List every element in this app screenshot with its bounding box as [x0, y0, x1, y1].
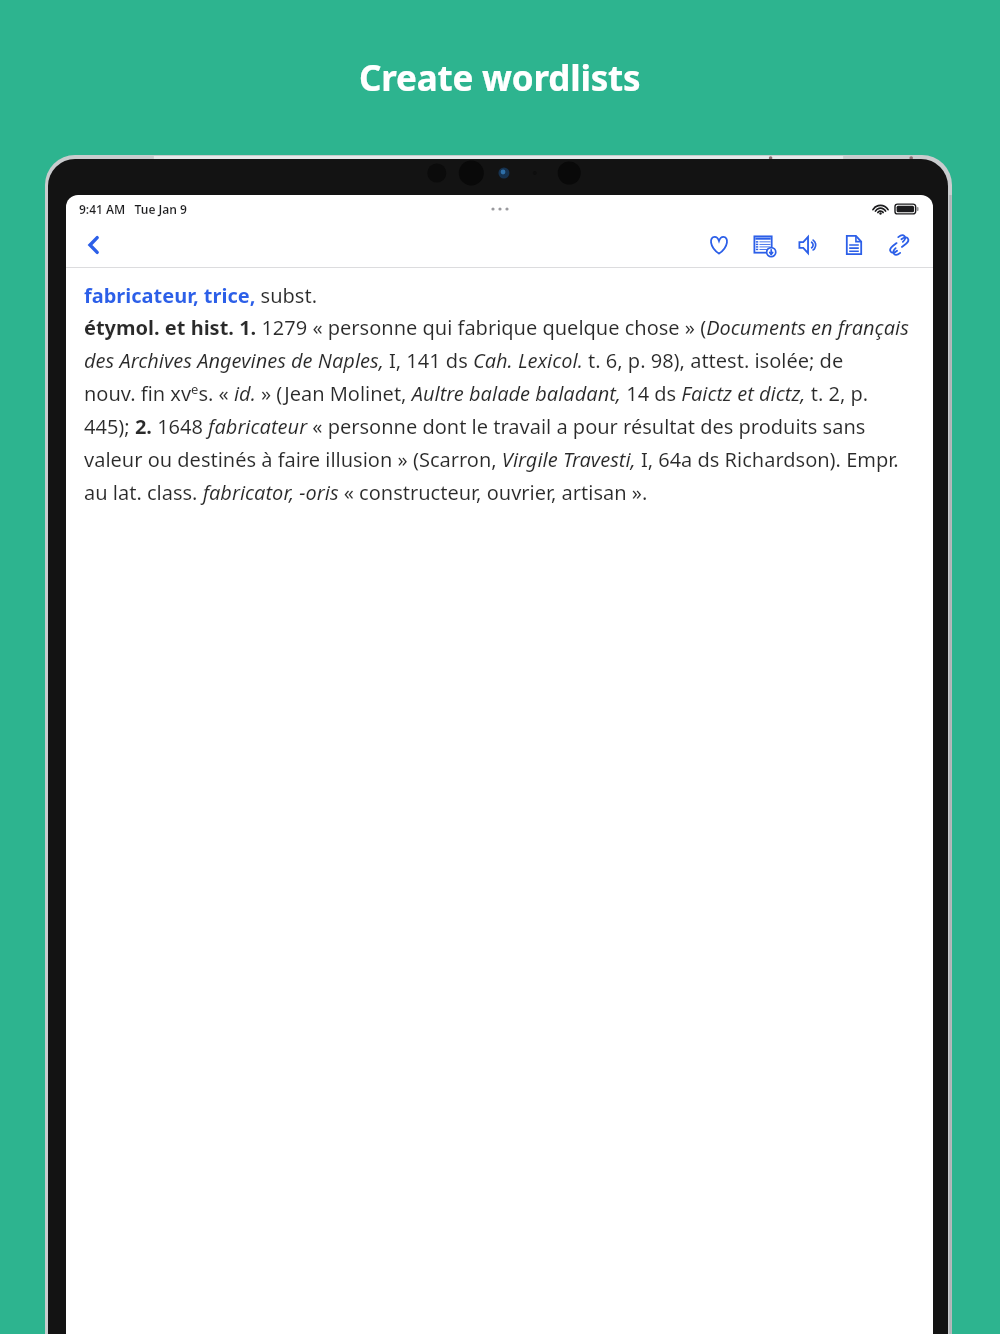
button[interactable]: Pronounce	[793, 229, 825, 261]
button[interactable]: Back	[72, 223, 116, 267]
staticText: Create wordlists	[359, 54, 641, 102]
button[interactable]: Save article	[748, 229, 780, 261]
button[interactable]: Favourite	[703, 229, 735, 261]
staticText: 9:41 AM Tue Jan 9	[79, 201, 187, 217]
button[interactable]: Document	[838, 229, 870, 261]
button[interactable]: Copy link	[883, 229, 915, 261]
staticText: nouv. fin xves. « id. » (Jean Molinet, A…	[84, 380, 919, 506]
staticText: fabricateur, trice, subst.	[84, 282, 317, 309]
staticText: étymol. et hist. 1. 1279 « personne qui …	[84, 314, 919, 374]
